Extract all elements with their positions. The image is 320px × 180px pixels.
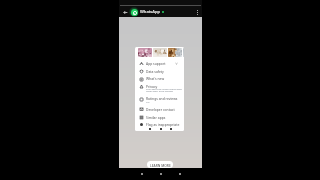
staticText: Flag as inappropriate [146,122,180,126]
button[interactable]: Back [138,170,145,177]
button[interactable] [135,67,184,75]
button[interactable]: Screenshot [153,48,167,57]
button[interactable] [135,104,184,113]
button[interactable] [135,94,184,104]
button[interactable]: LEARN MORE [147,161,173,168]
button[interactable] [135,113,184,121]
staticText: Ratings and reviews [146,96,178,100]
button[interactable]: Back [121,8,129,16]
staticText: What's new [146,76,165,80]
staticText: types with third parties [146,89,174,92]
button[interactable] [135,60,184,68]
staticText: Data safety [146,69,164,73]
button[interactable]: Home [157,170,164,177]
staticText: Similar apps [146,115,166,119]
button[interactable]: Recents [176,170,183,177]
button[interactable]: More options [193,8,201,16]
staticText: This app may share these data [146,87,182,90]
staticText: WhatsApp [140,9,161,15]
button[interactable]: Screenshot [168,48,182,57]
button[interactable] [135,83,184,95]
staticText: App support [146,61,166,65]
button[interactable]: Screenshot [138,48,152,57]
staticText: Developer contact [146,107,175,111]
staticText: Privacy [146,84,158,88]
button[interactable] [135,121,184,128]
button[interactable] [135,75,184,83]
staticText: LEARN MORE [150,163,171,167]
staticText: 4.3 [146,100,150,103]
